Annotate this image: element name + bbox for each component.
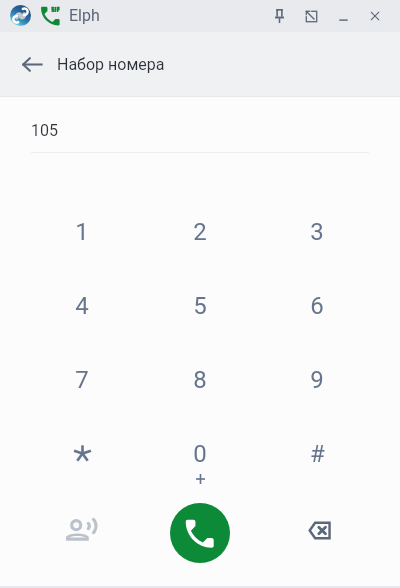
button[interactable]: 3 <box>280 200 354 264</box>
button[interactable] <box>45 422 119 486</box>
staticText: 8 <box>193 366 207 394</box>
staticText: 105 <box>31 121 58 140</box>
button[interactable]: Call <box>170 503 230 563</box>
button[interactable]: Pin <box>263 0 295 32</box>
button[interactable]: 4 <box>45 274 119 338</box>
button[interactable]: Back <box>8 40 56 88</box>
button[interactable]: Backspace <box>295 506 343 554</box>
button[interactable]: 9 <box>280 348 354 412</box>
button[interactable]: 8 <box>163 348 237 412</box>
staticText: 9 <box>310 366 324 394</box>
button[interactable]: 6 <box>280 274 354 338</box>
staticText: 1 <box>75 218 89 246</box>
staticText: 5 <box>193 292 207 320</box>
staticText: 7 <box>75 366 89 394</box>
button[interactable]: # <box>280 422 354 486</box>
button[interactable]: 7 <box>45 348 119 412</box>
staticText: 0 <box>193 440 207 468</box>
staticText: Elph <box>69 6 100 25</box>
staticText: # <box>310 440 325 468</box>
button[interactable]: Voice dial <box>57 505 105 553</box>
button[interactable]: 2 <box>163 200 237 264</box>
staticText: 4 <box>75 292 89 320</box>
staticText: 6 <box>310 292 324 320</box>
button[interactable]: 1 <box>45 200 119 264</box>
staticText: Набор номера <box>57 55 165 74</box>
button[interactable]: Restore <box>295 0 327 32</box>
staticText: 2 <box>193 218 207 246</box>
button[interactable]: 0 <box>163 422 237 486</box>
button[interactable]: Close <box>359 0 391 32</box>
staticText: 3 <box>310 218 324 246</box>
button[interactable]: Minimize <box>327 0 359 32</box>
button[interactable]: 5 <box>163 274 237 338</box>
